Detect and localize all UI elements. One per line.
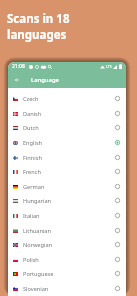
- button[interactable]: Italian: [8, 208, 126, 223]
- button[interactable]: Czech: [8, 91, 126, 106]
- button[interactable]: Danish: [8, 106, 126, 121]
- staticText: German: [23, 183, 45, 191]
- staticText: Scans in 18: [7, 11, 70, 27]
- staticText: Polish: [23, 256, 39, 264]
- button[interactable]: French: [8, 164, 126, 179]
- staticText: Italian: [23, 212, 40, 220]
- staticText: English: [23, 139, 43, 147]
- staticText: Language: [31, 76, 59, 84]
- staticText: Hungarian: [23, 197, 51, 205]
- staticText: Dutch: [23, 124, 39, 132]
- staticText: LTE: [106, 64, 112, 69]
- button[interactable]: Norwegian: [8, 237, 126, 252]
- button[interactable]: Hungarian: [8, 193, 126, 208]
- button[interactable]: Finnish: [8, 150, 126, 165]
- staticText: French: [23, 168, 41, 176]
- staticText: Norwegian: [23, 241, 52, 249]
- button[interactable]: Back: [11, 74, 22, 85]
- staticText: Czech: [23, 95, 39, 103]
- button[interactable]: Slovenian: [8, 281, 126, 296]
- button[interactable]: Polish: [8, 252, 126, 267]
- button[interactable]: Lithuanian: [8, 223, 126, 238]
- button[interactable]: Portuguese: [8, 266, 126, 281]
- button[interactable]: German: [8, 179, 126, 194]
- staticText: 21:08: [12, 63, 25, 70]
- staticText: Danish: [23, 110, 42, 118]
- staticText: Portuguese: [23, 270, 54, 278]
- button[interactable]: Dutch: [8, 120, 126, 135]
- staticText: Finnish: [23, 154, 42, 162]
- staticText: languages: [7, 27, 67, 43]
- staticText: Lithuanian: [23, 227, 51, 235]
- button[interactable]: English: [8, 135, 126, 150]
- staticText: Slovenian: [23, 285, 49, 293]
